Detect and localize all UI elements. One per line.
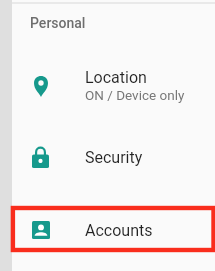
- button[interactable]: Accounts: [12, 193, 215, 267]
- staticText: Accounts: [85, 221, 153, 240]
- other: Location: [34, 76, 48, 97]
- button[interactable]: Location: [12, 50, 215, 122]
- staticText: Security: [85, 148, 143, 167]
- staticText: Location: [85, 68, 147, 87]
- button[interactable]: Security: [12, 122, 215, 193]
- staticText: Personal: [30, 15, 86, 31]
- other: Security: [32, 147, 49, 168]
- other: Accounts: [32, 221, 50, 239]
- staticText: ON / Device only: [85, 87, 185, 103]
